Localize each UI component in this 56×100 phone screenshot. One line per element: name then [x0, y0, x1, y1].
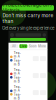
staticText: All: [12, 44, 16, 48]
staticText: Team B: [14, 59, 21, 66]
button[interactable]: Team A: [8, 67, 47, 84]
button[interactable]: More: [38, 44, 46, 48]
staticText: Team A: [14, 68, 21, 75]
button[interactable]: All: [10, 44, 18, 48]
button[interactable]: Protect coverage on 7 Victoria: [2, 5, 54, 11]
staticText: Team B: [14, 76, 21, 83]
staticText: Get every single experience: [2, 26, 54, 31]
staticText: Don't miss carry more than: [2, 13, 53, 24]
button[interactable]: Soon: [29, 44, 37, 48]
staticText: Team A: [14, 85, 21, 92]
staticText: Live: [20, 44, 27, 48]
button[interactable]: Team A: [8, 84, 47, 100]
staticText: Protect coverage on 7 Victoria: [3, 2, 53, 13]
staticText: Team A: [14, 51, 21, 58]
button[interactable]: Team A: [8, 50, 47, 67]
staticText: More: [38, 44, 46, 48]
staticText: Soon: [29, 44, 37, 48]
staticText: Team B: [14, 93, 21, 100]
button[interactable]: Live: [19, 44, 27, 48]
